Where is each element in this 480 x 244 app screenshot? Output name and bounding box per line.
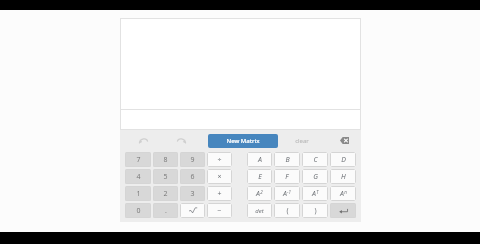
staticText: clear — [295, 137, 309, 145]
button[interactable]: Redo — [162, 133, 200, 148]
button[interactable]: 6 — [180, 169, 205, 184]
button[interactable]: A — [247, 152, 272, 167]
button[interactable]: 1 — [125, 186, 151, 201]
button[interactable]: H — [330, 169, 356, 184]
staticText: New Matrix — [226, 137, 260, 145]
staticText: A — [312, 189, 316, 199]
staticText: H — [341, 172, 346, 182]
button[interactable]: 8 — [153, 152, 178, 167]
staticText: A — [256, 189, 260, 199]
staticText: B — [285, 155, 290, 165]
staticText: 6 — [190, 172, 195, 182]
staticText: ÷ — [217, 155, 222, 165]
button[interactable]: 5 — [153, 169, 178, 184]
staticText: 1 — [136, 189, 141, 199]
staticText: A — [340, 189, 344, 199]
staticText: F — [285, 172, 289, 182]
button[interactable]: 2 — [153, 186, 178, 201]
button[interactable]: Square root — [180, 203, 205, 218]
button[interactable]: Backspace — [331, 133, 357, 148]
button[interactable]: 0 — [125, 203, 151, 218]
button[interactable]: D — [330, 152, 356, 167]
staticText: A — [283, 189, 287, 199]
staticText: 8 — [163, 155, 168, 165]
button[interactable]: × — [207, 169, 232, 184]
button[interactable]: New Matrix — [208, 134, 278, 148]
button[interactable]: clear — [278, 133, 326, 148]
staticText: D — [341, 155, 346, 165]
staticText: 3 — [190, 189, 195, 199]
button[interactable]: 9 — [180, 152, 205, 167]
button[interactable]: det — [247, 203, 272, 218]
button[interactable]: A — [302, 186, 328, 201]
button[interactable]: B — [274, 152, 300, 167]
button[interactable]: ) — [302, 203, 328, 218]
staticText: n — [344, 189, 347, 195]
staticText: 9 — [190, 155, 195, 165]
button[interactable]: ÷ — [207, 152, 232, 167]
staticText: 0 — [136, 206, 141, 216]
button[interactable]: 4 — [125, 169, 151, 184]
button[interactable]: Enter — [330, 203, 356, 218]
button[interactable]: G — [302, 169, 328, 184]
staticText: + — [217, 189, 222, 199]
staticText: A — [258, 155, 262, 165]
staticText: − — [217, 206, 222, 216]
staticText: 4 — [136, 172, 141, 182]
button[interactable]: 3 — [180, 186, 205, 201]
button[interactable]: F — [274, 169, 300, 184]
staticText: . — [165, 206, 167, 216]
staticText: 2 — [260, 189, 263, 195]
button[interactable]: A — [330, 186, 356, 201]
staticText: C — [313, 155, 318, 165]
button[interactable]: C — [302, 152, 328, 167]
button[interactable]: ( — [274, 203, 300, 218]
staticText: -1 — [287, 189, 291, 195]
button[interactable]: + — [207, 186, 232, 201]
button[interactable]: A — [247, 186, 272, 201]
staticText: 7 — [136, 155, 141, 165]
staticText: ( — [286, 206, 289, 216]
staticText: G — [313, 172, 318, 182]
staticText: 5 — [163, 172, 168, 182]
button[interactable]: 7 — [125, 152, 151, 167]
staticText: E — [258, 172, 262, 182]
staticText: ) — [314, 206, 317, 216]
staticText: T — [316, 189, 319, 195]
button[interactable]: A — [274, 186, 300, 201]
button[interactable]: − — [207, 203, 232, 218]
button[interactable]: Undo — [124, 133, 162, 148]
staticText: 2 — [163, 189, 168, 199]
staticText: det — [255, 207, 264, 215]
button[interactable]: E — [247, 169, 272, 184]
staticText: × — [217, 172, 222, 182]
